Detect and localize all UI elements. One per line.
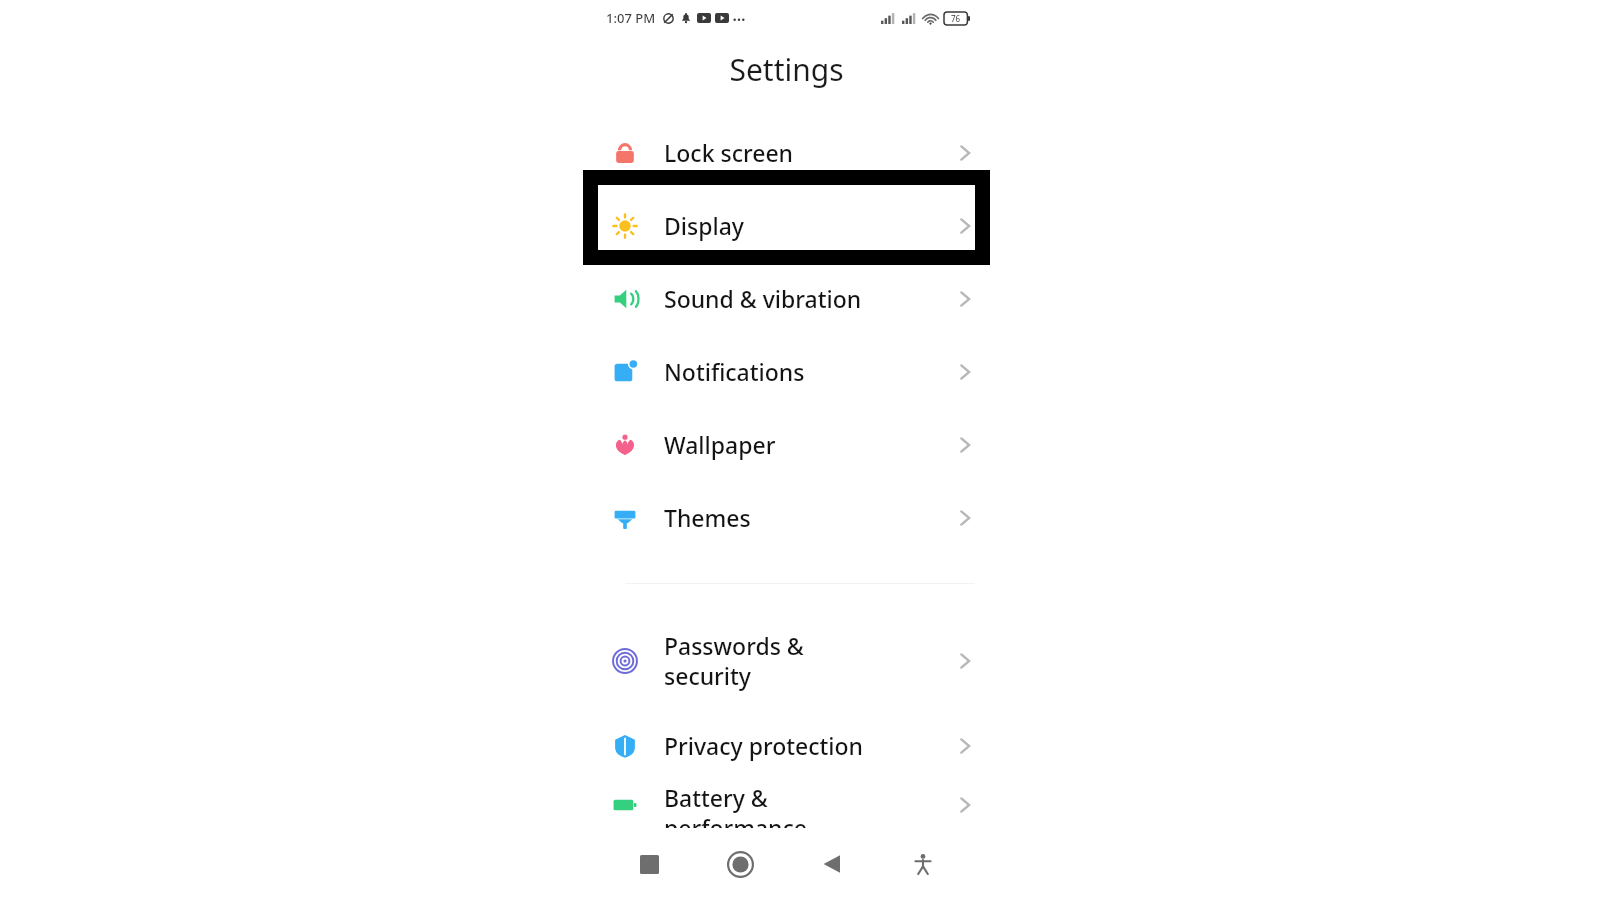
button[interactable]: Lock screen [582, 116, 990, 189]
staticText: 76 [951, 13, 961, 24]
button[interactable]: Back [808, 840, 856, 888]
staticText: Notifications [664, 356, 959, 387]
staticText: Battery & performance [664, 782, 959, 828]
button[interactable]: Notifications [582, 335, 990, 408]
button[interactable]: Themes [582, 481, 990, 554]
button[interactable]: Privacy protection [582, 709, 990, 782]
staticText: Passwords & security [664, 630, 959, 692]
staticText: Wallpaper [664, 429, 959, 460]
button[interactable]: Passwords & security [582, 613, 990, 709]
staticText: Settings [729, 49, 844, 90]
staticText: Sound & vibration [664, 283, 959, 314]
button[interactable]: Recents [625, 840, 673, 888]
staticText: Display [664, 210, 959, 241]
button[interactable]: Display [582, 189, 990, 262]
button[interactable]: Battery & performance [582, 782, 990, 828]
staticText: Privacy protection [664, 730, 959, 761]
button[interactable]: Sound & vibration [582, 262, 990, 335]
button[interactable]: Home [716, 840, 764, 888]
staticText: Lock screen [664, 137, 959, 168]
button[interactable]: Wallpaper [582, 408, 990, 481]
staticText: Themes [664, 502, 959, 533]
staticText: 1:07 PM [606, 9, 656, 27]
button[interactable]: Accessibility [899, 840, 947, 888]
